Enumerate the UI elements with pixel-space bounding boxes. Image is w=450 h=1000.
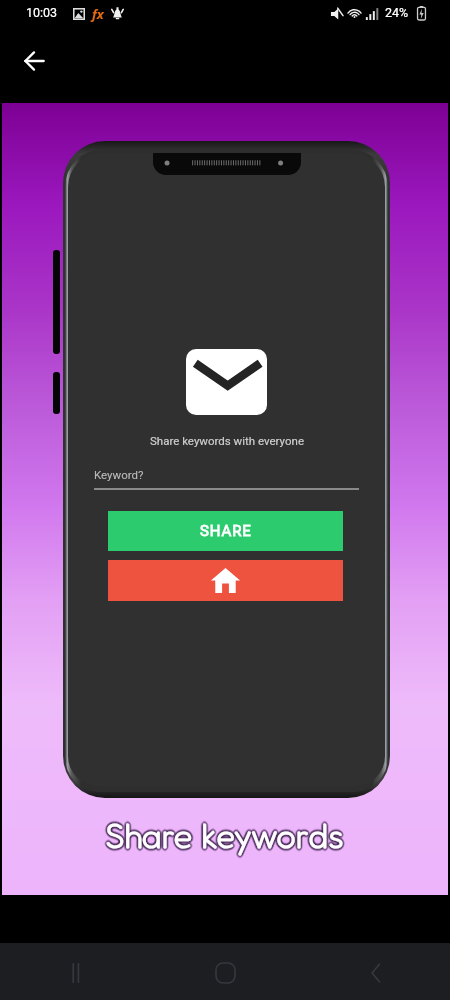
staticText: SHARE — [200, 522, 252, 540]
staticText: 10:03 — [26, 5, 58, 20]
staticText: 24% — [385, 5, 409, 20]
button[interactable]: SHARE — [108, 511, 343, 551]
staticText: fx — [92, 5, 104, 23]
staticText: Keyword? — [94, 468, 144, 481]
button[interactable]: Home — [108, 560, 343, 601]
staticText: Share keywords with everyone — [150, 434, 304, 447]
button[interactable]: Back — [14, 41, 55, 82]
